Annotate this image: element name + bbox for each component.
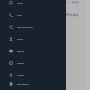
- staticText: Calls: [17, 14, 22, 17]
- staticText: Status: [17, 38, 24, 41]
- staticText: Chats: [17, 2, 23, 5]
- staticText: WhatsApp: [66, 13, 79, 17]
- button[interactable]: Chats: [0, 0, 66, 9]
- button[interactable]: Status: [0, 33, 66, 45]
- staticText: Videos: [17, 62, 24, 65]
- button[interactable]: Videos: [0, 57, 66, 69]
- staticText: Photos: [17, 50, 25, 53]
- button[interactable]: Calls Recording: [0, 21, 66, 33]
- button[interactable]: Photos: [0, 45, 66, 57]
- button[interactable]: Audios: [0, 69, 66, 81]
- button[interactable]: Documents: [0, 81, 66, 87]
- staticText: 9:41 ● ● ▮: [66, 0, 79, 3]
- staticText: Documents: [17, 83, 29, 86]
- staticText: Audios: [17, 74, 24, 77]
- staticText: Calls Recording: [17, 26, 33, 29]
- button[interactable]: Calls: [0, 9, 66, 21]
